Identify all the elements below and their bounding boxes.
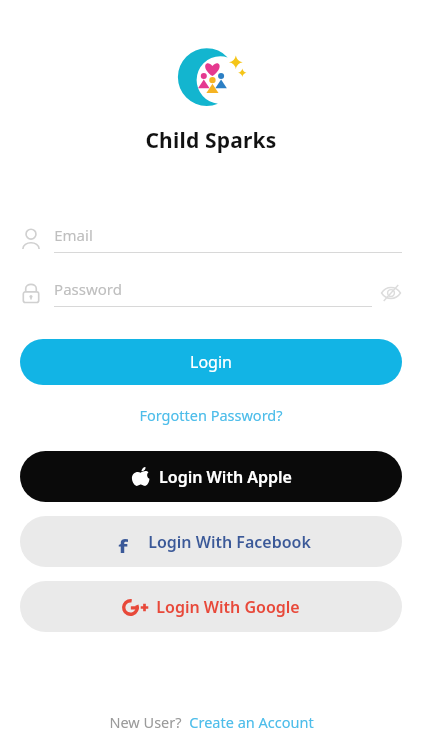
button[interactable]: f (20, 516, 402, 567)
staticText: Login (190, 351, 232, 373)
button[interactable]: Login (20, 339, 402, 385)
staticText: Password (54, 279, 122, 299)
staticText: Forgotten Password? (139, 405, 283, 425)
button[interactable]: Login With Apple (20, 451, 402, 502)
staticText: f (118, 531, 128, 553)
button[interactable]: Create an Account (189, 712, 314, 732)
staticText: Child Sparks (145, 126, 277, 155)
staticText: Login With Facebook (148, 531, 311, 553)
button[interactable]: Login With Google (20, 581, 402, 632)
button[interactable]: Show password (380, 282, 402, 304)
staticText: Login With Apple (159, 466, 292, 488)
staticText: Create an Account (189, 712, 314, 732)
staticText: New User? (109, 712, 182, 732)
staticText: Email (54, 225, 93, 245)
button[interactable]: Forgotten Password? (135, 401, 287, 429)
staticText: Login With Google (156, 596, 300, 618)
